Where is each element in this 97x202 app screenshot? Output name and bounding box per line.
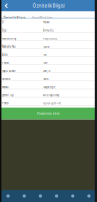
button[interactable]: Layers	[0, 190, 16, 202]
staticText: Ana Taşınmaz	[43, 93, 59, 97]
staticText: Öznitelik Bilgisi	[32, 3, 64, 9]
staticText: 156/1	[43, 61, 48, 65]
staticText: Zemin Tip	[2, 93, 14, 97]
staticText: Mahalle No	[2, 45, 16, 48]
staticText: Nitelik	[2, 77, 10, 81]
staticText: Parsel	[2, 61, 9, 65]
staticText: Parselime Ekle	[37, 111, 60, 116]
staticText: 2961,15	[43, 69, 50, 73]
staticText: Tavşantepe	[43, 85, 55, 89]
staticText: Mevkii	[2, 85, 9, 89]
button[interactable]: Grup/Blok Liste	[30, 11, 55, 18]
staticText: Tarla	[43, 77, 48, 81]
button[interactable]: Draw	[65, 190, 81, 202]
staticText: Grup/Blok Liste	[32, 16, 53, 20]
staticText: Tapu Alanı	[2, 69, 16, 73]
staticText: 156	[43, 53, 46, 56]
staticText: İlçe	[2, 29, 6, 32]
staticText: Yalova	[43, 21, 49, 24]
button[interactable]: Search	[32, 190, 48, 202]
button[interactable]: Locate	[16, 190, 32, 202]
staticText: Pafta	[2, 102, 8, 105]
button[interactable]: Parselime Ekle	[0, 108, 97, 120]
button[interactable]: Öznitelik Bilgisi	[2, 11, 27, 18]
staticText: İl	[2, 21, 4, 24]
staticText: Mahalle/Köy	[2, 37, 16, 40]
staticText: 108-00	[43, 45, 49, 48]
staticText: Ada	[2, 53, 7, 56]
staticText: Öznitelik Bilgisi	[3, 16, 25, 20]
staticText: Karpuzdere	[43, 37, 57, 40]
button[interactable]: More	[81, 190, 97, 202]
button[interactable]: Measure	[48, 190, 65, 202]
button[interactable]: Back	[0, 1, 14, 10]
staticText: G21-D-22-B-1-B	[43, 102, 61, 105]
staticText: Armutlu	[43, 29, 54, 32]
